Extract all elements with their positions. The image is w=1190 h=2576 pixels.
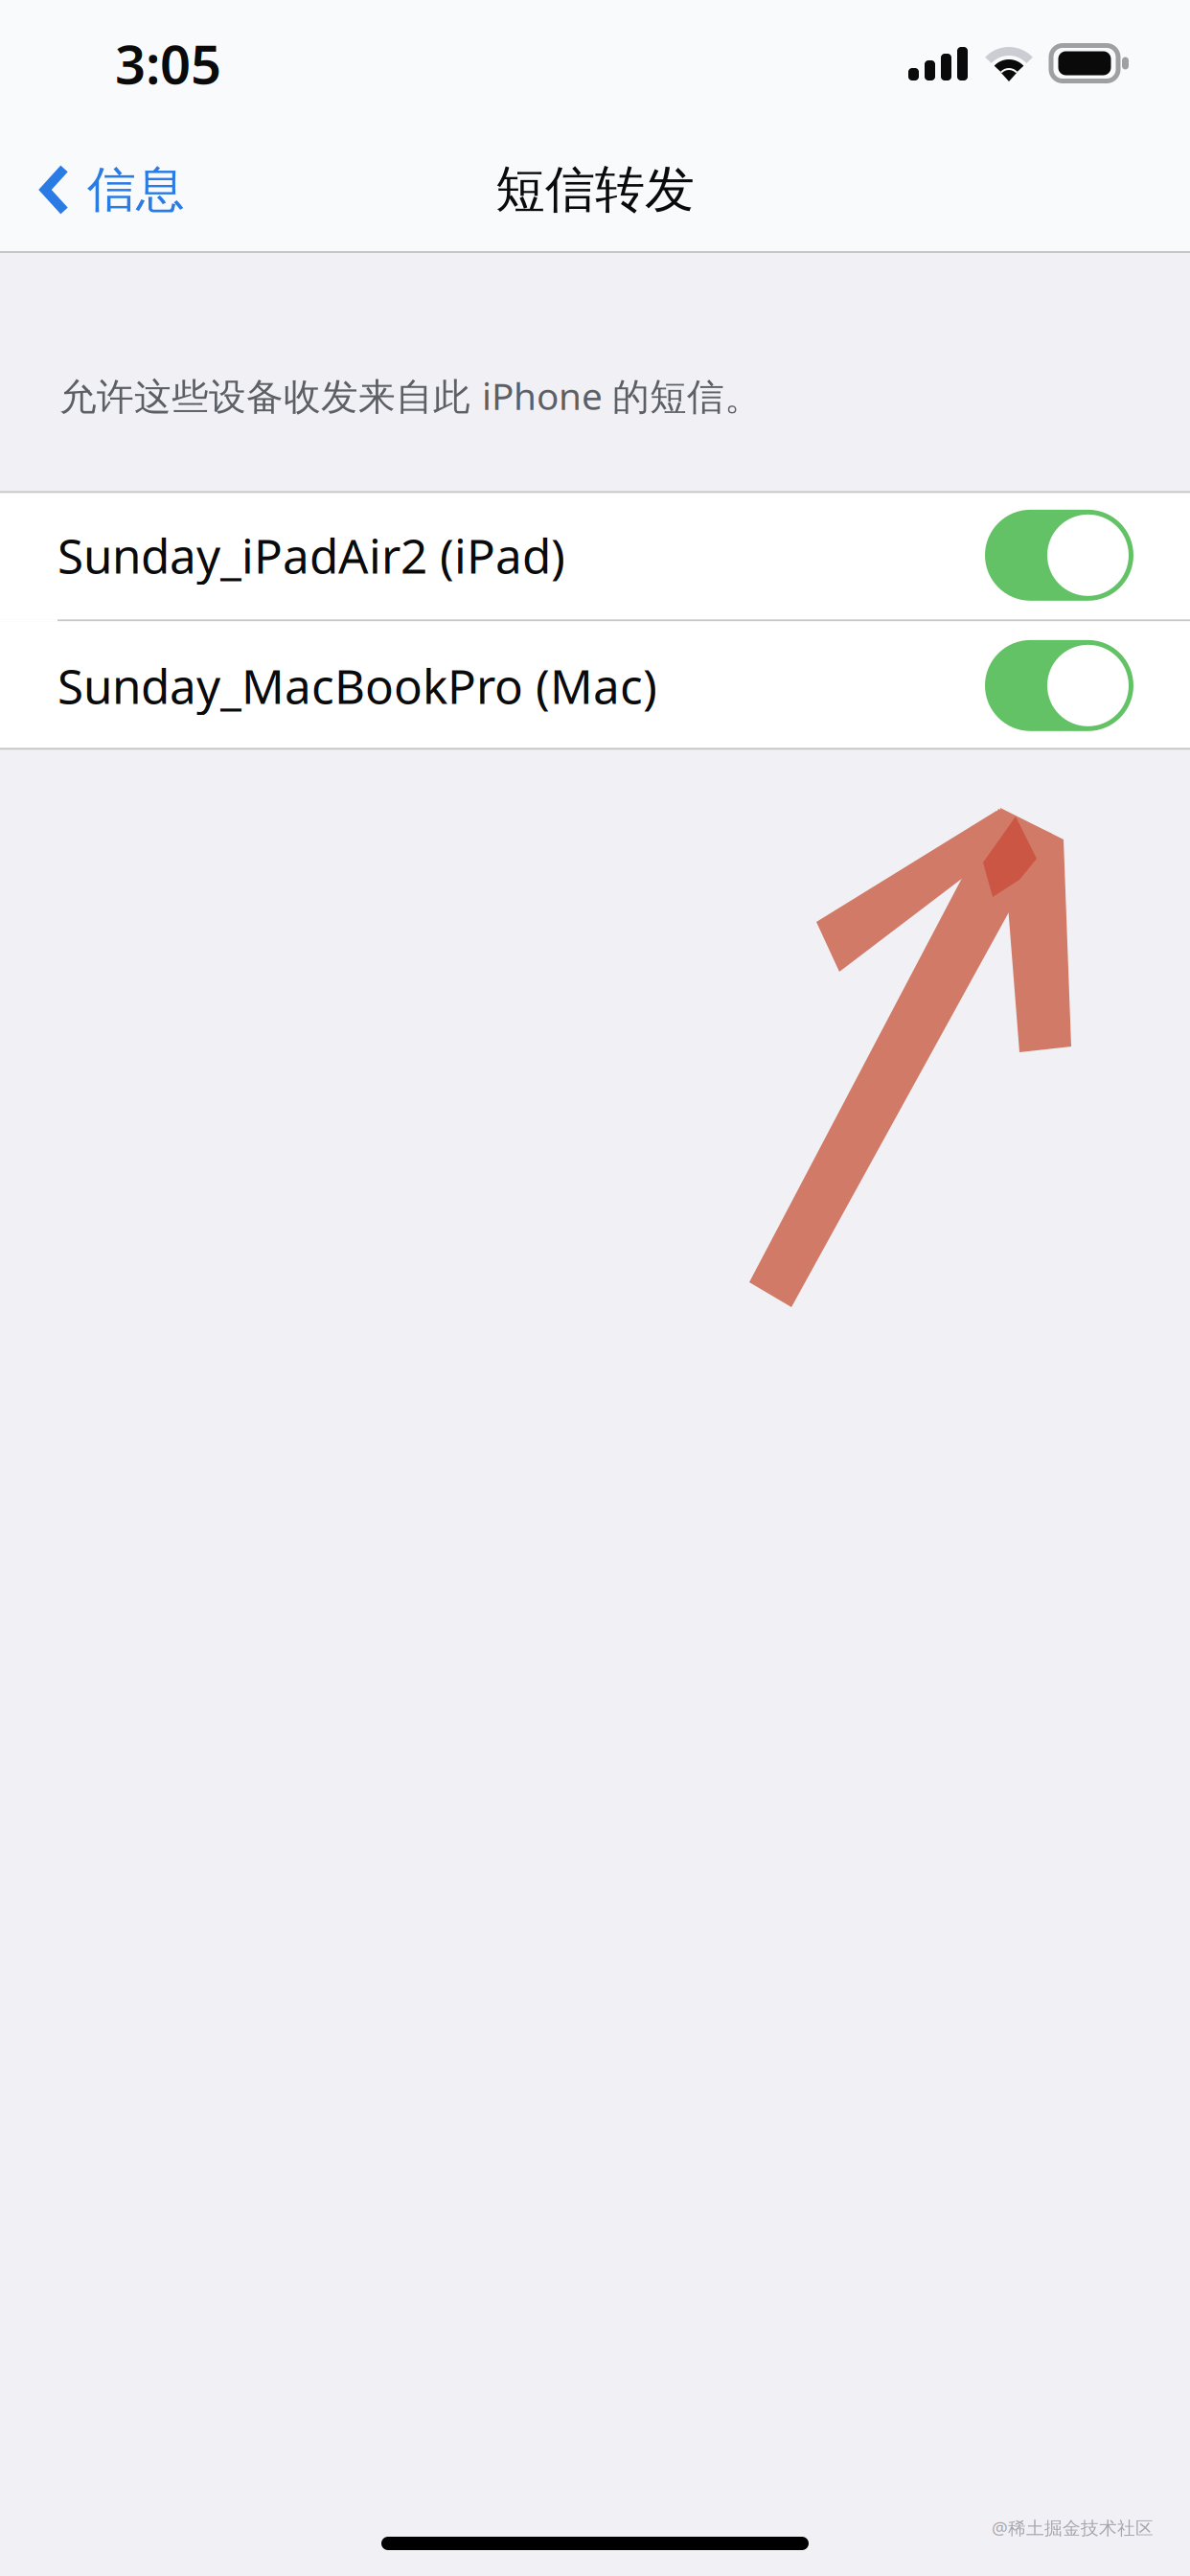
button[interactable]: Forward text messages to Sunday_iPadAir2…: [985, 510, 1133, 601]
staticText: @稀土掘金技术社区: [992, 2516, 1154, 2540]
staticText: 短信转发: [495, 159, 695, 220]
button[interactable]: Forward text messages to Sunday_MacBookP…: [985, 640, 1133, 731]
staticText: 信息: [87, 160, 185, 220]
button[interactable]: Sunday_MacBookPro (Mac): [0, 621, 1190, 750]
button[interactable]: 信息: [0, 127, 210, 252]
button[interactable]: Sunday_iPadAir2 (iPad): [0, 491, 1190, 619]
staticText: 3:05: [115, 28, 221, 99]
staticText: Sunday_iPadAir2 (iPad): [57, 524, 565, 587]
staticText: Sunday_MacBookPro (Mac): [57, 654, 657, 717]
staticText: 允许这些设备收发来自此 iPhone 的短信。: [59, 371, 762, 420]
